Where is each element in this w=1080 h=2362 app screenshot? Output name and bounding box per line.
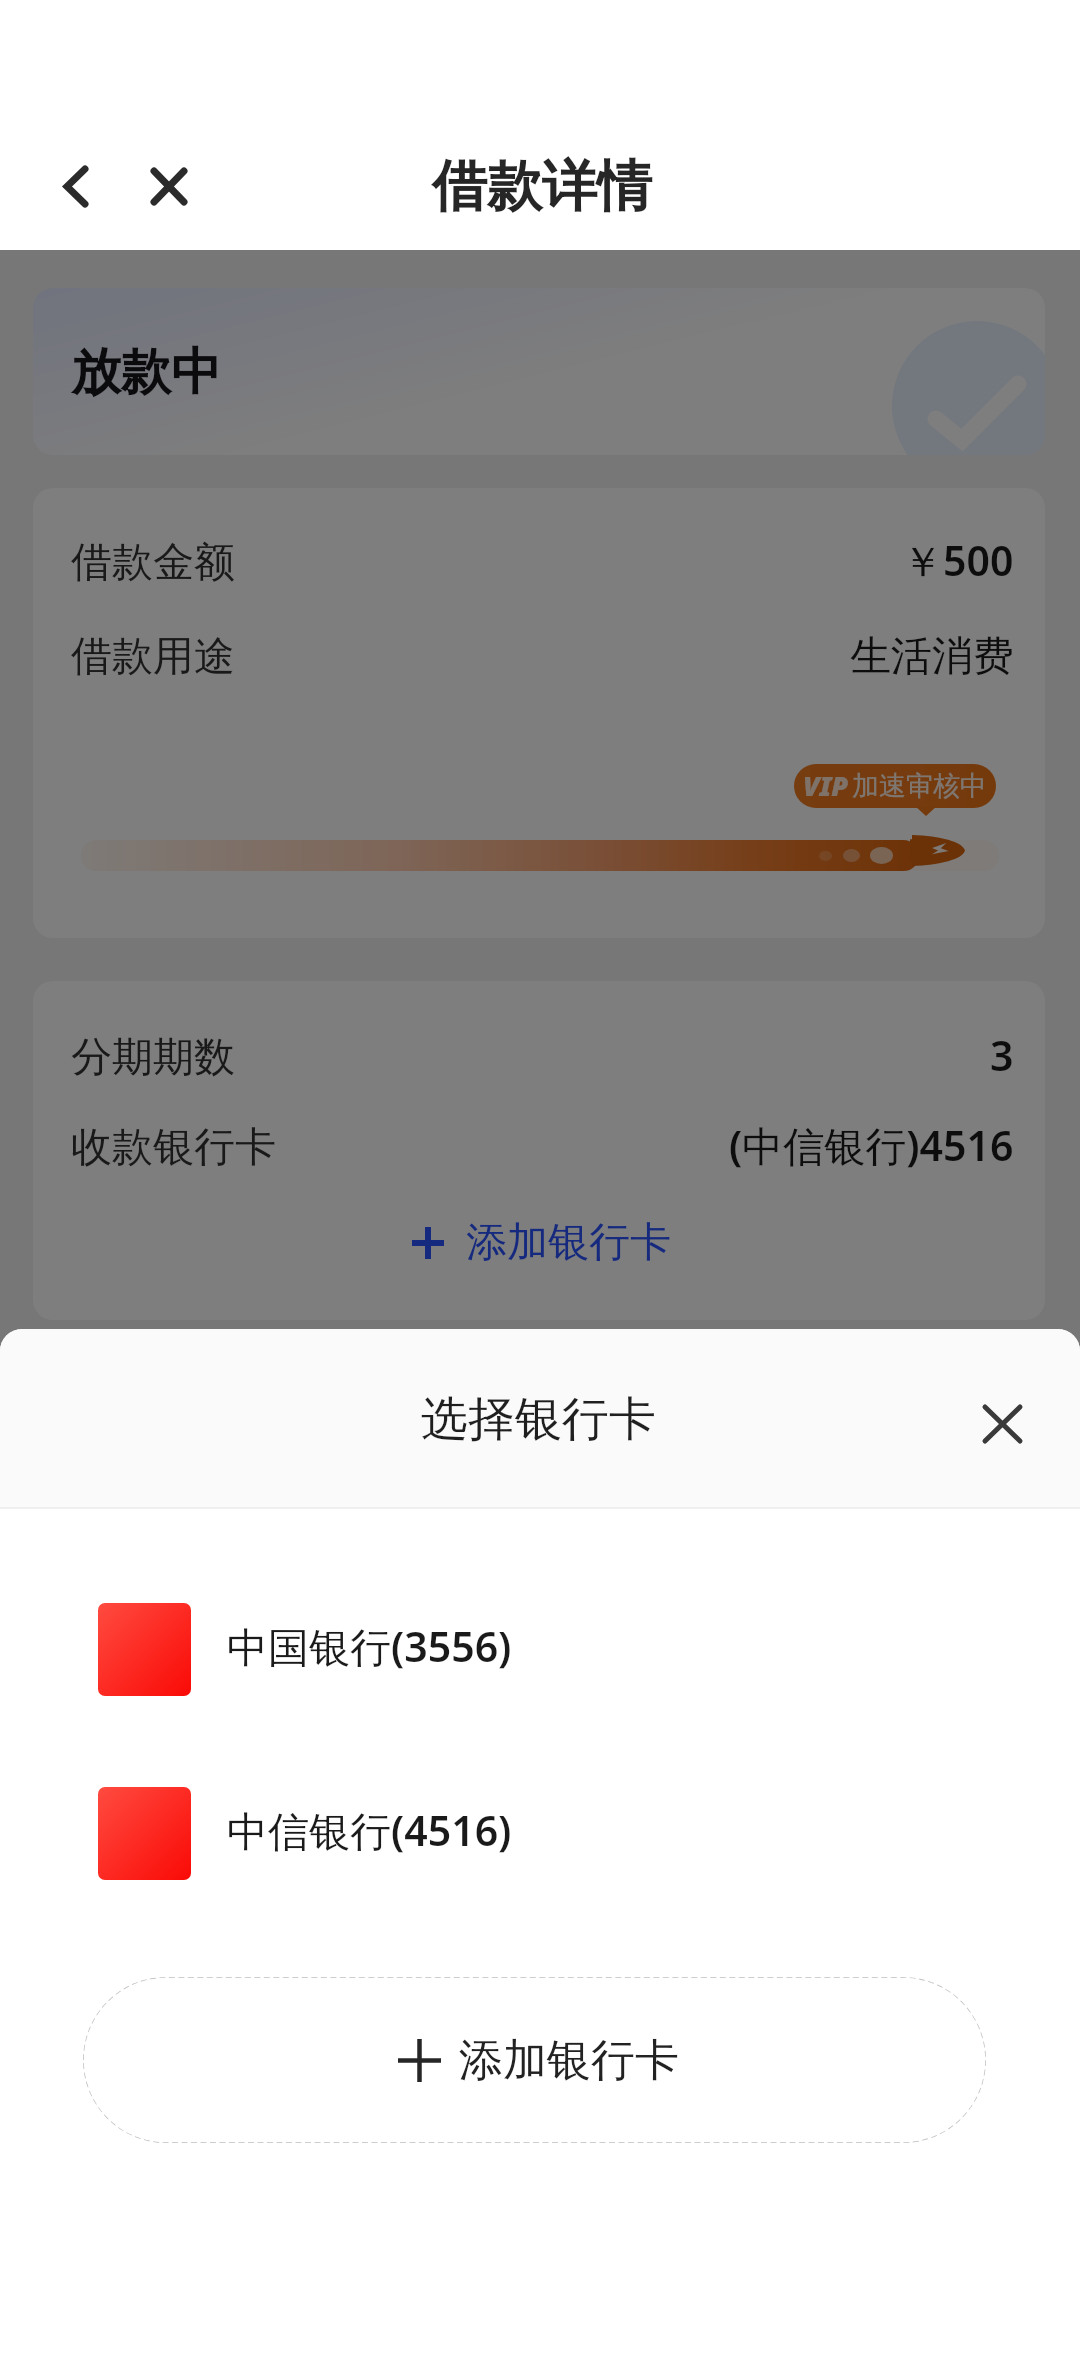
button[interactable]: Close xyxy=(124,141,214,231)
staticText: 收款银行卡 xyxy=(71,1122,276,1174)
staticText: 中国银行(3556) xyxy=(227,1618,512,1674)
staticText: ￥500 xyxy=(902,532,1014,588)
button[interactable]: 添加银行卡 xyxy=(83,1977,986,2143)
staticText: 借款金额 xyxy=(71,537,235,589)
button[interactable]: 添加银行卡 xyxy=(392,1207,691,1279)
staticText: VIP xyxy=(803,767,848,804)
staticText: 分期期数 xyxy=(71,1032,235,1084)
staticText: 中信银行(4516) xyxy=(227,1802,512,1858)
staticText: 放款中 xyxy=(71,341,221,404)
button[interactable]: Close xyxy=(962,1384,1042,1464)
staticText: 3 xyxy=(990,1027,1014,1083)
button[interactable]: 中信银行(4516) xyxy=(0,1787,1080,1880)
staticText: 借款详情 xyxy=(432,152,652,221)
staticText: 选择银行卡 xyxy=(421,1390,656,1449)
staticText: 添加银行卡 xyxy=(459,2033,679,2088)
staticText: (中信银行)4516 xyxy=(729,1117,1014,1173)
button[interactable]: Back xyxy=(31,141,121,231)
staticText: 添加银行卡 xyxy=(466,1217,671,1269)
staticText: 加速审核中 xyxy=(852,769,987,803)
staticText: 生活消费 xyxy=(850,631,1014,683)
button[interactable]: 中国银行(3556) xyxy=(0,1603,1080,1696)
staticText: 借款用途 xyxy=(71,631,235,683)
